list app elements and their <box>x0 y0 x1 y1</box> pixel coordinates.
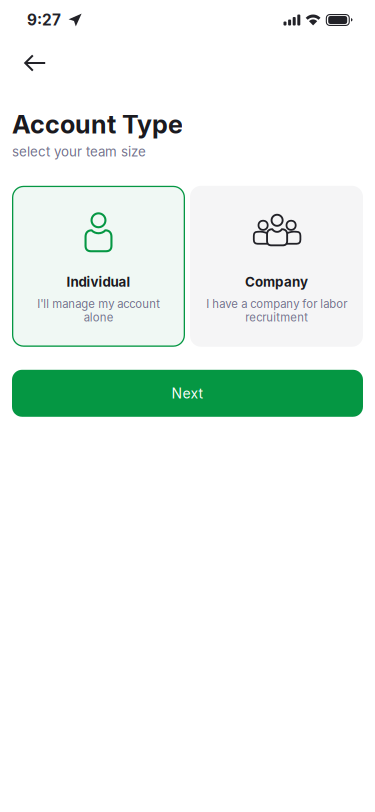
staticText: I have a company for labor recruitment <box>206 297 347 324</box>
staticText: Next <box>171 385 203 402</box>
staticText: Company <box>245 274 308 290</box>
button[interactable]: Back <box>11 40 59 80</box>
staticText: Account Type <box>12 109 183 140</box>
button[interactable]: Individual <box>12 186 185 347</box>
staticText: I'll manage my account alone <box>37 297 160 324</box>
staticText: 9:27 <box>27 11 61 29</box>
staticText: select your team size <box>12 144 146 160</box>
staticText: Individual <box>66 274 130 290</box>
button[interactable]: Next <box>12 370 363 417</box>
button[interactable]: Company <box>190 186 363 347</box>
